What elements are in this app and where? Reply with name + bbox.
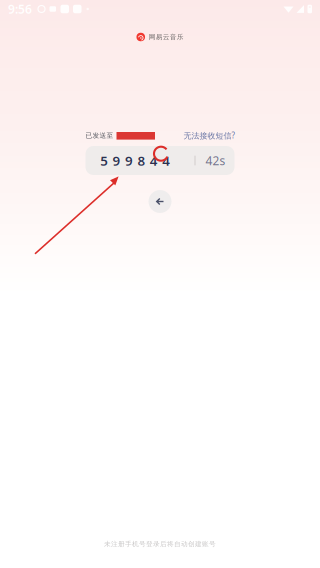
staticText: 9 xyxy=(113,152,121,169)
button[interactable]: Back xyxy=(148,190,171,213)
staticText: 9 xyxy=(125,152,133,169)
staticText: 已发送至 xyxy=(85,131,113,140)
staticText: 无法接收短信? xyxy=(183,130,234,141)
staticText: 9:56 xyxy=(8,1,32,17)
staticText: 网易云音乐 xyxy=(149,33,184,41)
staticText: 4 xyxy=(162,152,170,169)
staticText: 4 xyxy=(150,152,158,169)
staticText: 8 xyxy=(137,152,145,169)
staticText: 5 xyxy=(100,152,108,169)
staticText: 未注册手机号登录后将自动创建账号 xyxy=(104,540,216,548)
button[interactable]: 无法接收短信? xyxy=(183,130,234,141)
staticText: 42s xyxy=(205,152,225,168)
